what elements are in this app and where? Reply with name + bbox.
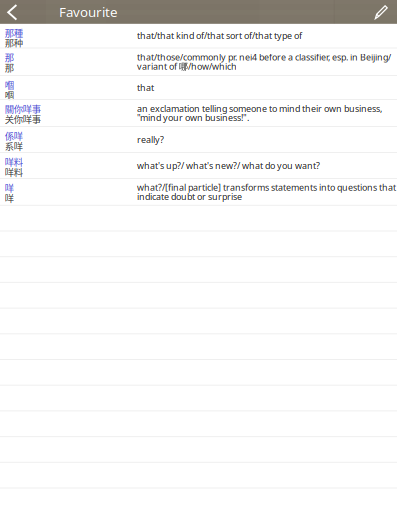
button[interactable]: 咩料 <box>0 153 397 179</box>
staticText: what's up?/ what's new?/ what do you wan… <box>137 159 320 172</box>
staticText: 咩 <box>5 181 14 194</box>
button[interactable]: 關你咩事 <box>0 100 397 127</box>
staticText: 嗰 <box>5 88 14 102</box>
staticText: 那 <box>5 50 14 64</box>
button[interactable]: Back <box>0 0 33 24</box>
staticText: 那 <box>5 61 14 74</box>
staticText: 咩料 <box>5 165 23 179</box>
staticText: that/that kind of/that sort of/that type… <box>137 30 302 42</box>
button[interactable]: 咩 <box>0 179 397 206</box>
staticText: 系咩 <box>5 139 23 153</box>
staticText: 關你咩事 <box>5 102 41 115</box>
staticText: 那種 <box>5 26 23 39</box>
staticText: 係咩 <box>5 129 23 142</box>
staticText: that/those/commonly pr. nei4 before a cl… <box>137 51 391 63</box>
staticText: Favourite <box>59 3 118 21</box>
staticText: really? <box>137 133 164 146</box>
staticText: "mind your own business!". <box>137 111 249 124</box>
staticText: 咩 <box>5 191 14 205</box>
button[interactable]: 係咩 <box>0 127 397 153</box>
staticText: 嗰 <box>5 78 14 91</box>
staticText: 咩料 <box>5 155 23 168</box>
staticText: what?/[final particle] transforms statem… <box>137 181 396 193</box>
staticText: an exclamation telling someone to mind t… <box>137 102 382 114</box>
staticText: 那种 <box>5 36 23 49</box>
staticText: that <box>137 81 154 94</box>
staticText: indicate doubt or surprise <box>137 190 242 203</box>
button[interactable]: 那 <box>0 48 397 76</box>
button[interactable]: 那種 <box>0 24 397 48</box>
staticText: 关你咩事 <box>5 112 41 126</box>
staticText: variant of 哪/how/which <box>137 60 237 72</box>
button[interactable]: 嗰 <box>0 76 397 100</box>
button[interactable]: Edit <box>368 0 397 24</box>
